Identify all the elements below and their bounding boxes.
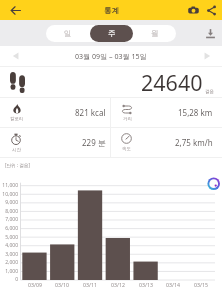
button[interactable]: Back	[5, 0, 25, 20]
staticText: 11,000	[0, 182, 18, 189]
staticText: 03/12	[104, 281, 132, 288]
staticText: 03/13	[132, 281, 160, 288]
staticText: 8,000	[0, 208, 18, 215]
button[interactable]: 주	[90, 25, 133, 42]
staticText: 3,000	[0, 251, 18, 258]
staticText: 통계	[104, 6, 119, 15]
button[interactable]: Previous week	[7, 48, 23, 64]
staticText: 229 분	[82, 137, 106, 148]
button[interactable]: 월	[133, 25, 176, 42]
button[interactable]: Share	[202, 1, 220, 19]
staticText: 03/14	[159, 281, 187, 288]
staticText: 속도	[122, 146, 131, 152]
staticText: 7,000	[0, 216, 18, 223]
staticText: 2,75 km/h	[175, 137, 213, 148]
staticText: 03/15	[187, 281, 215, 288]
staticText: 6,000	[0, 225, 18, 232]
staticText: 주	[108, 29, 116, 38]
staticText: 10,000	[0, 191, 18, 198]
button[interactable]: 일	[46, 25, 90, 42]
staticText: 9,000	[0, 199, 18, 206]
button[interactable]: 거리	[111, 98, 222, 127]
staticText: 03월 09일 – 03월 15일	[75, 51, 147, 61]
staticText: 4,000	[0, 242, 18, 249]
staticText: 시간	[12, 147, 21, 153]
staticText: 일	[64, 29, 72, 38]
button[interactable]: 칼로리	[0, 98, 110, 127]
staticText: [단위 : 걸음]	[5, 162, 31, 168]
button[interactable]: 속도	[111, 128, 222, 157]
button[interactable]: 시간	[0, 128, 110, 157]
staticText: 5,000	[0, 234, 18, 241]
staticText: 월	[151, 29, 159, 38]
staticText: 24640	[141, 68, 203, 97]
staticText: 칼로리	[10, 116, 24, 122]
staticText: 15,28 km	[178, 107, 213, 118]
staticText: 거리	[123, 116, 132, 122]
staticText: 03/11	[76, 281, 104, 288]
button[interactable]: Next week	[199, 48, 215, 64]
staticText: 03/10	[48, 281, 76, 288]
button[interactable]: Download	[201, 24, 219, 42]
button[interactable]: Camera	[184, 1, 202, 19]
staticText: 1,000	[0, 268, 18, 275]
staticText: 걸음	[205, 89, 215, 95]
staticText: 821 kcal	[75, 107, 106, 118]
staticText: 2,000	[0, 259, 18, 266]
staticText: 0	[0, 276, 18, 283]
button[interactable]: 24640	[111, 67, 222, 97]
staticText: 03/09	[21, 281, 49, 288]
